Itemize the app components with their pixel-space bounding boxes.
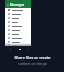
button[interactable] bbox=[5, 40, 31, 44]
button[interactable] bbox=[5, 36, 31, 40]
button[interactable] bbox=[5, 32, 31, 36]
other: Menu bbox=[7, 4, 9, 6]
button[interactable] bbox=[5, 20, 31, 24]
button[interactable] bbox=[5, 12, 31, 16]
button[interactable] bbox=[5, 16, 31, 20]
button[interactable]: Menu bbox=[5, 0, 31, 8]
button[interactable] bbox=[5, 24, 31, 28]
button[interactable] bbox=[5, 44, 31, 46]
button[interactable] bbox=[5, 28, 31, 32]
button[interactable] bbox=[5, 8, 31, 12]
staticText: Share files or create bbox=[14, 55, 51, 60]
staticText: content on the go bbox=[18, 61, 47, 66]
staticText: Messages bbox=[10, 3, 25, 7]
